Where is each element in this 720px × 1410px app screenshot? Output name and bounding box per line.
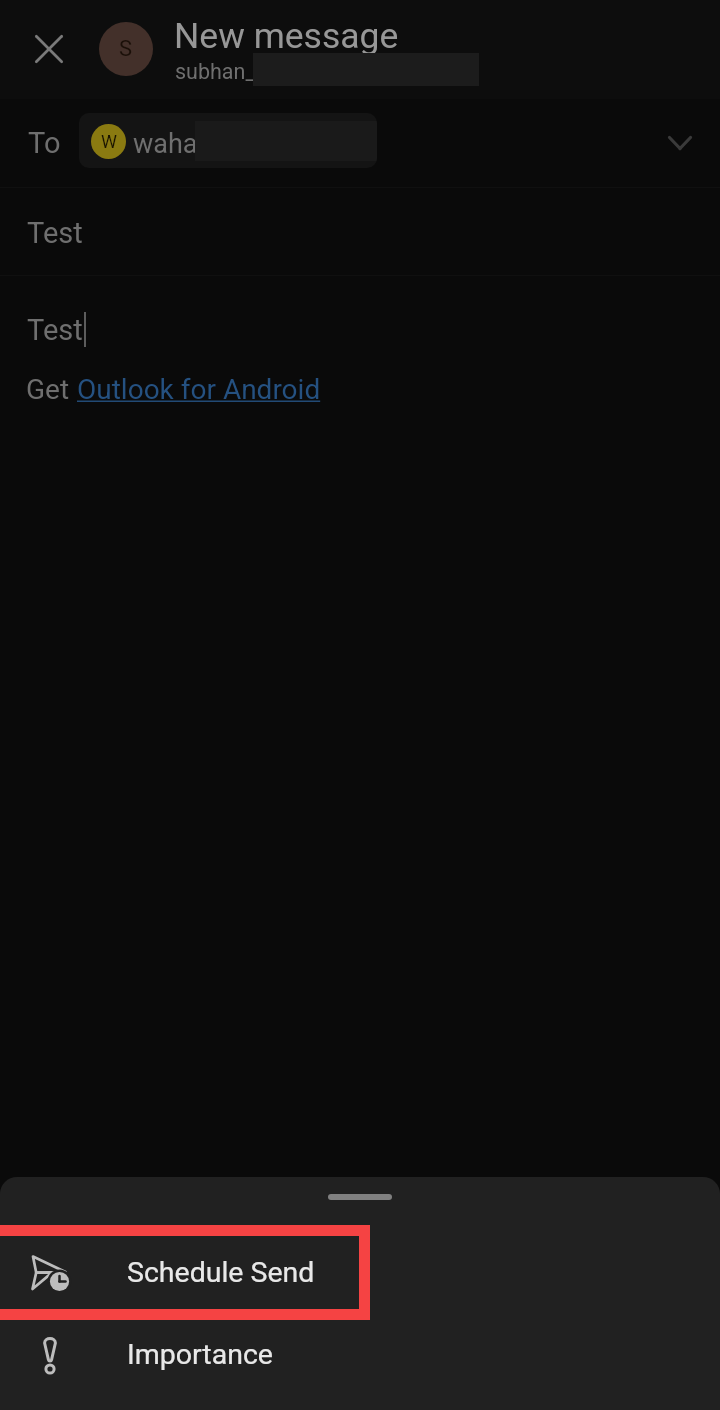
button[interactable]: Close — [0, 0, 98, 98]
staticText: Schedule Send — [127, 1256, 315, 1289]
staticText: waha — [133, 128, 198, 160]
button[interactable]: Importance — [0, 1307, 720, 1402]
staticText: S — [119, 36, 133, 62]
staticText: To — [28, 126, 61, 160]
staticText: Test — [27, 216, 83, 250]
button[interactable]: Expand recipients — [640, 104, 720, 184]
staticText: Test — [27, 313, 83, 347]
button[interactable]: Test — [0, 188, 720, 276]
staticText: New message — [174, 15, 399, 57]
staticText: Importance — [127, 1338, 273, 1371]
staticText: Get — [26, 373, 77, 406]
staticText: Outlook for Android — [77, 373, 321, 406]
staticText: subhan_ — [175, 59, 256, 84]
button[interactable]: W — [79, 113, 377, 168]
staticText: W — [101, 131, 117, 152]
button[interactable]: Schedule Send — [0, 1225, 720, 1320]
